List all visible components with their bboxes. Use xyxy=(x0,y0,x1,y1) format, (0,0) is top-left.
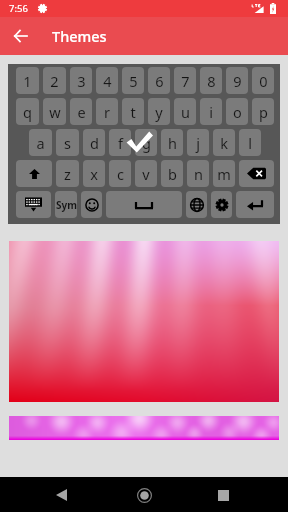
button[interactable]: q xyxy=(16,98,39,125)
staticText: Themes xyxy=(52,26,107,46)
button[interactable]: t xyxy=(122,98,144,125)
button[interactable] xyxy=(9,241,279,402)
staticText: b xyxy=(168,164,177,184)
staticText: 8 xyxy=(207,71,216,91)
button[interactable]: o xyxy=(226,98,248,125)
staticText: c xyxy=(117,164,124,184)
staticText: 2 xyxy=(50,71,59,91)
staticText: 9 xyxy=(233,71,242,91)
button[interactable]: s xyxy=(56,129,79,156)
button[interactable]: y xyxy=(148,98,170,125)
staticText: i xyxy=(209,102,213,122)
staticText: 6 xyxy=(155,71,164,91)
staticText: v xyxy=(142,164,150,184)
button[interactable]: w xyxy=(43,98,66,125)
staticText: 3 xyxy=(77,71,86,91)
button[interactable]: h xyxy=(161,129,183,156)
button[interactable] xyxy=(236,191,274,218)
button[interactable]: k xyxy=(213,129,235,156)
staticText: m xyxy=(217,164,231,184)
button[interactable]: 5 xyxy=(122,67,144,94)
button[interactable]: 4 xyxy=(96,67,118,94)
staticText: u xyxy=(181,102,190,122)
button[interactable]: g xyxy=(135,129,157,156)
staticText: Sym xyxy=(56,198,77,212)
staticText: l xyxy=(248,133,252,153)
staticText: 1 xyxy=(23,71,32,91)
button[interactable]: Back xyxy=(6,22,34,50)
button[interactable]: b xyxy=(161,160,183,187)
button[interactable]: 6 xyxy=(148,67,170,94)
staticText: 0 xyxy=(259,71,268,91)
button[interactable]: 0 xyxy=(252,67,274,94)
button[interactable]: f xyxy=(109,129,131,156)
button[interactable]: 7 xyxy=(174,67,196,94)
button[interactable] xyxy=(211,191,232,218)
staticText: 7 xyxy=(181,71,190,91)
button[interactable]: Back xyxy=(47,481,75,509)
staticText: h xyxy=(168,133,177,153)
staticText: q xyxy=(23,102,32,122)
staticText: x xyxy=(90,164,98,184)
staticText: f xyxy=(118,133,123,153)
staticText: e xyxy=(77,102,86,122)
button[interactable]: 3 xyxy=(70,67,92,94)
button[interactable]: 1 xyxy=(16,67,39,94)
button[interactable] xyxy=(16,160,52,187)
button[interactable]: x xyxy=(83,160,105,187)
staticText: j xyxy=(196,133,200,153)
staticText: r xyxy=(104,102,110,122)
button[interactable]: n xyxy=(187,160,209,187)
button[interactable]: c xyxy=(109,160,131,187)
staticText: t xyxy=(130,102,136,122)
staticText: 7:56 xyxy=(9,2,28,15)
button[interactable]: u xyxy=(174,98,196,125)
staticText: a xyxy=(36,133,45,153)
staticText: w xyxy=(49,102,61,122)
staticText: k xyxy=(220,133,228,153)
button[interactable] xyxy=(106,191,182,218)
button[interactable]: 9 xyxy=(226,67,248,94)
staticText: 5 xyxy=(129,71,138,91)
staticText: n xyxy=(194,164,203,184)
staticText: p xyxy=(259,102,268,122)
button[interactable]: 8 xyxy=(200,67,222,94)
button[interactable]: a xyxy=(29,129,52,156)
button[interactable]: m xyxy=(213,160,235,187)
button[interactable] xyxy=(81,191,102,218)
button[interactable]: p xyxy=(252,98,274,125)
staticText: o xyxy=(233,102,242,122)
button[interactable]: l xyxy=(239,129,261,156)
button[interactable]: v xyxy=(135,160,157,187)
button[interactable]: 2 xyxy=(43,67,66,94)
button[interactable]: Home xyxy=(130,481,158,509)
staticText: g xyxy=(142,133,151,153)
staticText: s xyxy=(64,133,71,153)
button[interactable]: d xyxy=(83,129,105,156)
button[interactable]: Recent apps xyxy=(209,481,237,509)
staticText: 4 xyxy=(103,71,112,91)
button[interactable]: e xyxy=(70,98,92,125)
button[interactable]: Sym xyxy=(55,191,77,218)
button[interactable] xyxy=(186,191,207,218)
button[interactable]: i xyxy=(200,98,222,125)
staticText: y xyxy=(155,102,163,122)
button[interactable] xyxy=(9,416,279,440)
button[interactable]: r xyxy=(96,98,118,125)
staticText: d xyxy=(90,133,99,153)
button[interactable] xyxy=(239,160,274,187)
button[interactable] xyxy=(16,191,51,218)
button[interactable]: j xyxy=(187,129,209,156)
button[interactable]: z xyxy=(56,160,79,187)
staticText: z xyxy=(64,164,71,184)
